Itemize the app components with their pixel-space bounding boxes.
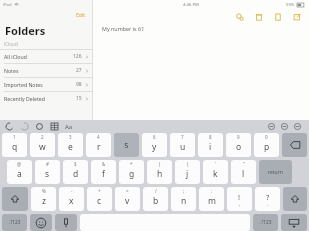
- staticText: q: [12, 141, 18, 153]
- button[interactable]: %: [31, 187, 56, 211]
- staticText: 6: [153, 134, 156, 140]
- staticText: y: [152, 141, 157, 153]
- button[interactable]: (: [147, 160, 172, 184]
- button[interactable]: Shift: [283, 187, 307, 211]
- button[interactable]: Hide: [279, 121, 290, 132]
- staticText: k: [213, 168, 218, 180]
- button[interactable]: Hide keyboard: [281, 214, 307, 231]
- button[interactable]: ': [203, 160, 228, 184]
- button[interactable]: Imported Notes: [0, 78, 92, 91]
- staticText: Folders: [5, 23, 46, 38]
- button[interactable]: Notes: [0, 64, 92, 77]
- button[interactable]: Dictate: [55, 214, 77, 231]
- button[interactable]: return: [259, 160, 292, 184]
- button[interactable]: &: [91, 160, 116, 184]
- button[interactable]: Delete: [252, 10, 265, 23]
- button[interactable]: Aa: [64, 122, 74, 132]
- button[interactable]: 5: [114, 133, 139, 157]
- staticText: 5: [124, 140, 129, 150]
- staticText: c: [97, 195, 102, 207]
- button[interactable]: All iCloud: [0, 50, 92, 63]
- staticText: @: [17, 161, 22, 167]
- staticText: .: [267, 201, 269, 208]
- button[interactable]: @: [7, 160, 32, 184]
- button[interactable]: Redo: [19, 121, 30, 132]
- button[interactable]: 4: [86, 133, 111, 157]
- staticText: return: [268, 169, 283, 176]
- button[interactable]: #: [35, 160, 60, 184]
- button[interactable]: .?123: [2, 214, 27, 231]
- staticText: .?123: [9, 219, 21, 226]
- staticText: ;: [183, 188, 185, 194]
- button[interactable]: Format: [266, 121, 277, 132]
- staticText: 4: [97, 134, 100, 140]
- button[interactable]: .?123: [253, 214, 278, 231]
- staticText: ': [215, 161, 217, 167]
- staticText: 27: [76, 67, 82, 74]
- staticText: 59%: [286, 2, 295, 8]
- staticText: f: [102, 168, 105, 180]
- button[interactable]: Paste: [34, 121, 45, 132]
- staticText: $: [74, 161, 77, 167]
- button[interactable]: 2: [30, 133, 55, 157]
- staticText: i: [209, 141, 212, 153]
- button[interactable]: :: [199, 187, 224, 211]
- staticText: 7: [181, 134, 184, 140]
- button[interactable]: 9: [226, 133, 251, 157]
- button[interactable]: *: [119, 160, 144, 184]
- staticText: 3: [69, 134, 72, 140]
- button[interactable]: Emoji: [30, 214, 52, 231]
- staticText: 0: [265, 134, 268, 140]
- staticText: z: [42, 195, 46, 207]
- staticText: #: [46, 161, 49, 167]
- button[interactable]: 3: [58, 133, 83, 157]
- staticText: Edit: [76, 12, 85, 19]
- staticText: All iCloud: [4, 53, 27, 60]
- button[interactable]: +: [87, 187, 112, 211]
- button[interactable]: Insert table: [49, 121, 60, 132]
- button[interactable]: =: [115, 187, 140, 211]
- button[interactable]: 6: [142, 133, 167, 157]
- button[interactable]: /: [143, 187, 168, 211]
- button[interactable]: Edit: [74, 10, 87, 21]
- staticText: e: [68, 141, 73, 153]
- button[interactable]: -: [59, 187, 84, 211]
- button[interactable]: Close: [292, 121, 303, 132]
- staticText: x: [69, 195, 74, 207]
- button[interactable]: 1: [2, 133, 27, 157]
- button[interactable]: !: [227, 187, 252, 211]
- staticText: m: [208, 195, 216, 207]
- button[interactable]: 0: [254, 133, 279, 157]
- staticText: n: [181, 195, 187, 207]
- staticText: Recently Deleted: [4, 95, 45, 102]
- button[interactable]: Markup: [233, 10, 246, 23]
- staticText: p: [264, 141, 270, 153]
- staticText: Notes: [4, 67, 19, 74]
- staticText: 4:46 PM: [183, 2, 199, 8]
- staticText: h: [157, 168, 163, 180]
- staticText: iPad: [3, 2, 12, 8]
- button[interactable]: New note: [271, 10, 284, 23]
- staticText: s: [45, 168, 50, 180]
- button[interactable]: ): [175, 160, 200, 184]
- staticText: My number is 61: [102, 25, 145, 32]
- staticText: 15: [76, 95, 82, 102]
- staticText: l: [242, 168, 245, 180]
- button[interactable]: 7: [170, 133, 195, 157]
- button[interactable]: Recently Deleted: [0, 92, 92, 105]
- button[interactable]: Undo: [4, 121, 15, 132]
- button[interactable]: Compose: [290, 10, 303, 23]
- button[interactable]: Backspace: [282, 133, 307, 157]
- staticText: 2: [41, 134, 44, 140]
- button[interactable]: 8: [198, 133, 223, 157]
- button[interactable]: ;: [171, 187, 196, 211]
- button[interactable]: Shift: [2, 187, 28, 211]
- button[interactable]: ?: [255, 187, 280, 211]
- staticText: ": [243, 161, 245, 167]
- button[interactable]: $: [63, 160, 88, 184]
- staticText: /: [155, 188, 157, 194]
- button[interactable]: ": [231, 160, 256, 184]
- staticText: 98: [76, 81, 82, 88]
- staticText: :: [211, 188, 213, 194]
